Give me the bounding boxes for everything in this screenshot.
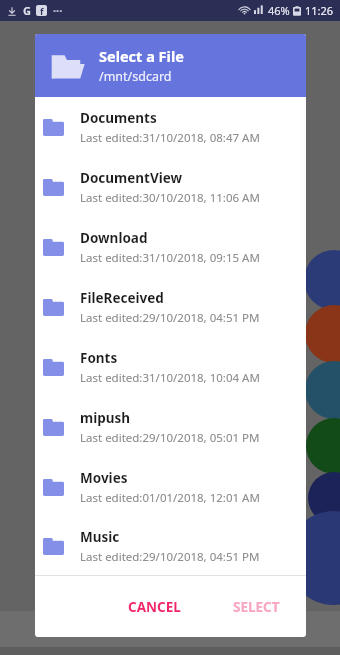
button[interactable]: Select a File	[35, 34, 306, 97]
staticText: Select a File	[99, 46, 184, 66]
staticText: Documents	[80, 109, 157, 127]
staticText: Last edited:01/01/2018, 12:01 AM	[80, 490, 260, 506]
staticText: Last edited:29/10/2018, 04:51 PM	[80, 310, 260, 326]
staticText: ···	[53, 3, 63, 18]
staticText: Download	[80, 229, 148, 247]
button[interactable]: DocumentView	[35, 157, 306, 217]
staticText: Last edited:29/10/2018, 05:01 PM	[80, 430, 260, 446]
staticText: 11:26	[305, 3, 334, 18]
staticText: G	[23, 3, 31, 18]
button[interactable]: SELECT	[221, 590, 292, 624]
staticText: SELECT	[233, 598, 280, 616]
staticText: /mnt/sdcard	[99, 68, 172, 85]
button[interactable]: Music	[35, 517, 306, 575]
staticText: Last edited:30/10/2018, 11:06 AM	[80, 190, 260, 206]
staticText: FileReceived	[80, 289, 164, 307]
staticText: Music	[80, 528, 120, 546]
staticText: mipush	[80, 409, 131, 427]
button[interactable]: FileReceived	[35, 277, 306, 337]
staticText: Last edited:31/10/2018, 10:04 AM	[80, 370, 260, 386]
staticText: Last edited:31/10/2018, 09:15 AM	[80, 250, 260, 266]
staticText: CANCEL	[128, 598, 181, 616]
button[interactable]: Download	[35, 217, 306, 277]
staticText: DocumentView	[80, 169, 183, 187]
staticText: Fonts	[80, 349, 118, 367]
button[interactable]: CANCEL	[116, 590, 193, 624]
staticText: f	[40, 5, 44, 16]
button[interactable]: Movies	[35, 457, 306, 517]
staticText: Movies	[80, 469, 128, 487]
staticText: 46%	[268, 3, 290, 18]
button[interactable]: mipush	[35, 397, 306, 457]
button[interactable]: Documents	[35, 97, 306, 157]
staticText: Last edited:31/10/2018, 08:47 AM	[80, 130, 260, 146]
staticText: Last edited:29/10/2018, 04:51 PM	[80, 549, 260, 565]
button[interactable]: Fonts	[35, 337, 306, 397]
staticText: PDF Tools	[225, 611, 285, 629]
